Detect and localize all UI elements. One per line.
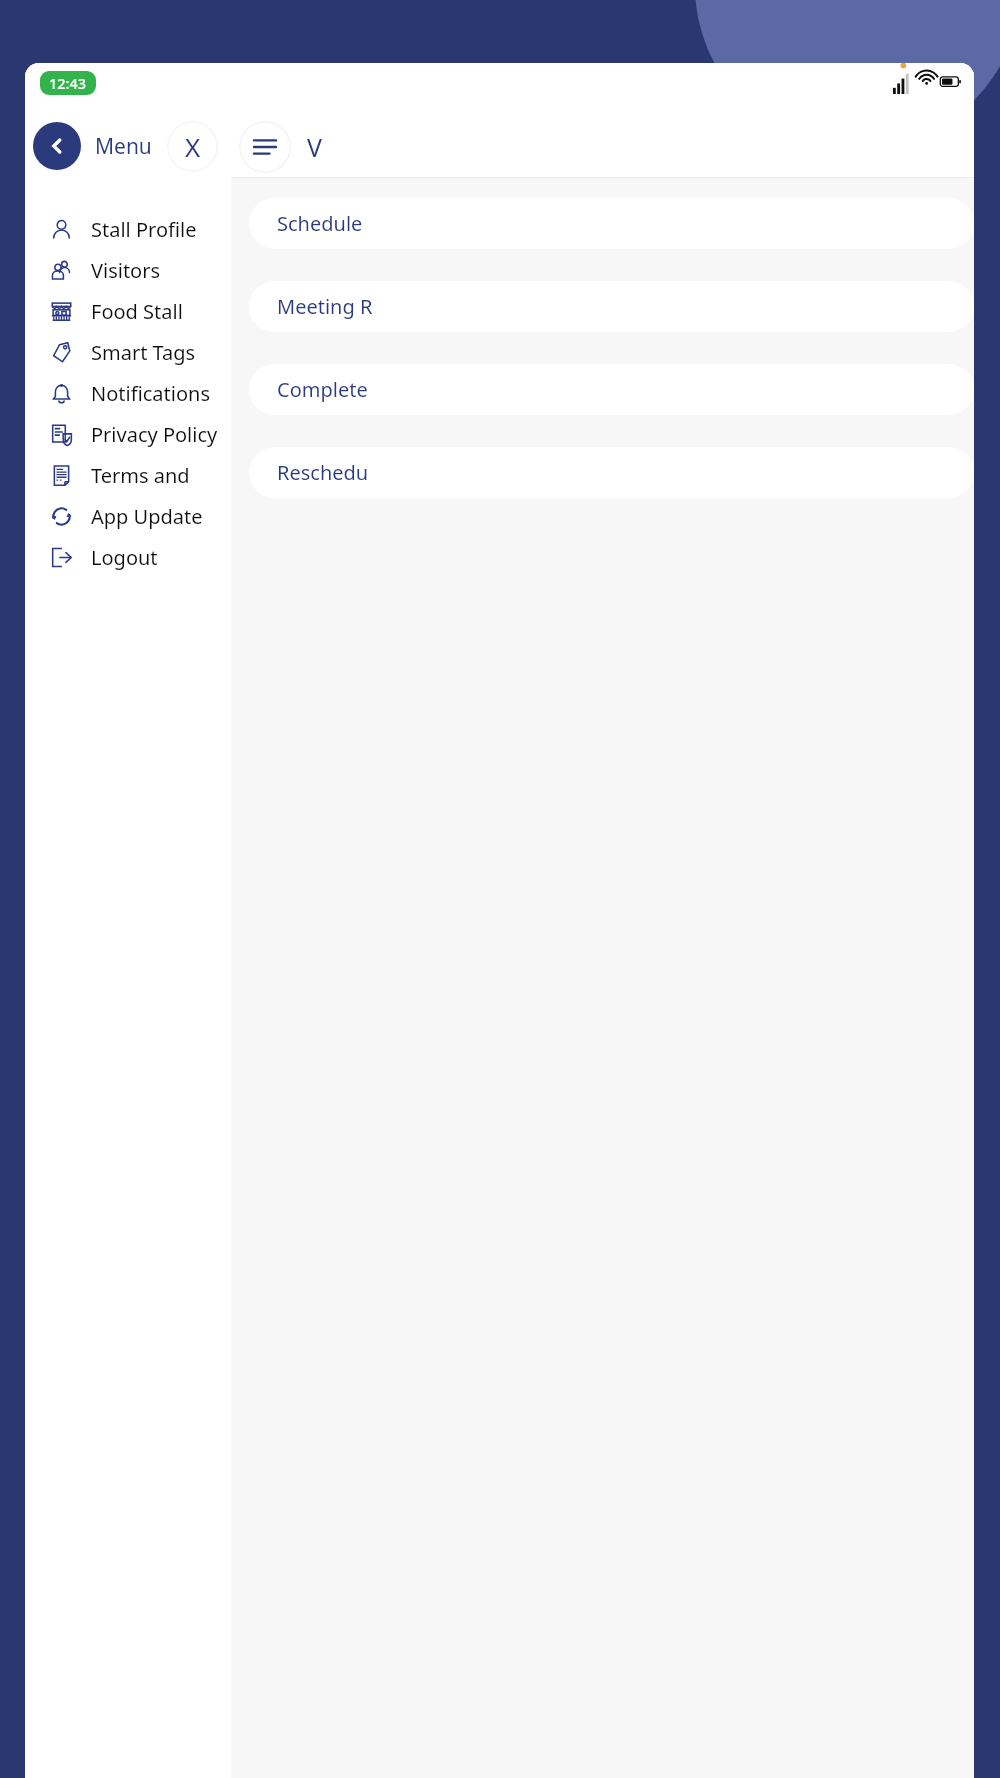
button[interactable]: Schedule [249,198,974,249]
button[interactable]: Close [167,121,218,172]
staticText: App Update [91,503,203,530]
staticText: Schedule [277,210,363,237]
staticText: Stall Profile [91,216,197,243]
staticText: Terms and Conditions [91,462,231,489]
staticText: Complete [277,376,368,403]
button[interactable]: Terms and Conditions [25,455,231,496]
staticText: X [185,129,201,164]
button[interactable]: Stall Profile [25,209,231,250]
button[interactable]: Back [33,122,81,170]
staticText: Reschedu [277,459,369,486]
button[interactable]: Meeting R [249,281,974,332]
staticText: Food Stall [91,298,183,325]
button[interactable]: App Update [25,496,231,537]
staticText: Visitors [91,257,161,284]
button[interactable]: Food Stall [25,291,231,332]
staticText: Privacy Policy [91,421,218,448]
staticText: Meeting R [277,293,373,320]
button[interactable]: Visitors [25,250,231,291]
button[interactable]: Menu [95,132,152,161]
button[interactable]: Logout [25,537,231,578]
button[interactable]: Privacy Policy [25,414,231,455]
button[interactable]: Complete [249,364,974,415]
staticText: V [307,130,323,164]
staticText: 12:43 [49,73,87,93]
button[interactable]: Smart Tags [25,332,231,373]
button[interactable]: Notifications [25,373,231,414]
staticText: Smart Tags [91,339,196,366]
staticText: Notifications [91,380,210,407]
button[interactable]: Open menu [239,121,291,173]
staticText: Logout [91,544,158,571]
button[interactable]: Reschedu [249,447,974,498]
